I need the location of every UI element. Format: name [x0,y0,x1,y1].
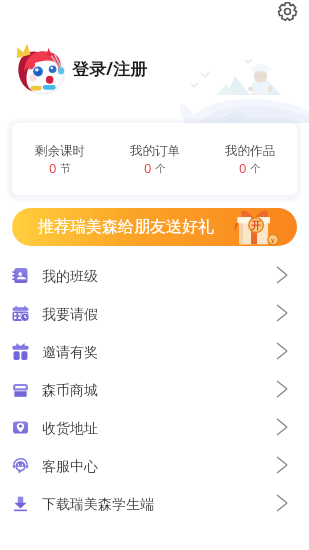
staticText: 登录/注册 [72,57,148,80]
staticText: ¥ [271,237,275,245]
staticText: 个 [250,162,261,175]
staticText: 推荐瑞美森给朋友送好礼 [38,217,214,237]
button[interactable]: 我的班级 [0,256,309,294]
staticText: 0 [239,159,247,177]
staticText: 节 [60,162,71,175]
staticText: 客服中心 [42,458,98,476]
button[interactable]: 客服中心 [0,446,309,484]
staticText: 我的作品 [225,143,275,159]
button[interactable]: 我要请假 [0,294,309,332]
button[interactable]: 我的作品 [202,123,297,195]
staticText: 森币商城 [42,382,98,400]
staticText: 收货地址 [42,420,98,438]
staticText: 我的订单 [130,143,180,159]
button[interactable]: 森币商城 [0,370,309,408]
staticText: 剩余课时 [35,143,85,159]
staticText: 0 [144,159,152,177]
button[interactable]: Settings [278,2,297,21]
button[interactable]: 邀请有奖 [0,332,309,370]
staticText: 邀请有奖 [42,344,98,362]
button[interactable]: 下载瑞美森学生端 [0,484,309,522]
staticText: 0 [49,159,57,177]
staticText: 个 [155,162,166,175]
button[interactable]: 收货地址 [0,408,309,446]
staticText: 我要请假 [42,306,98,324]
staticText: 下载瑞美森学生端 [42,496,154,514]
button[interactable]: 剩余课时 [12,123,107,195]
button[interactable]: 我的订单 [107,123,202,195]
staticText: 我的班级 [42,268,98,286]
button[interactable]: 推荐瑞美森给朋友送好礼 [12,206,297,248]
staticText: 开 [251,219,261,232]
